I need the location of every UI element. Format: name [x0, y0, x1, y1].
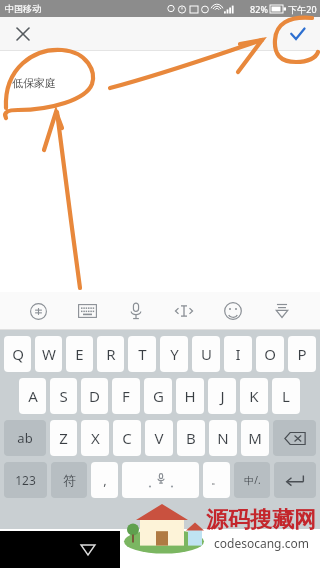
button[interactable]: key [274, 462, 316, 498]
button[interactable]: key [122, 462, 199, 498]
staticText: Y [170, 344, 179, 364]
staticText: O [264, 344, 276, 364]
staticText: 。 [211, 473, 222, 487]
button[interactable]: F [112, 378, 140, 414]
staticText: H [184, 386, 196, 406]
button[interactable]: J [208, 378, 236, 414]
button[interactable]: Hide keyboard [73, 535, 103, 565]
staticText: J [220, 386, 225, 406]
staticText: X [91, 428, 100, 448]
staticText: G [153, 386, 164, 406]
button[interactable]: Confirm [282, 19, 312, 49]
staticText: 符 [63, 472, 76, 488]
button[interactable]: More [265, 294, 299, 328]
staticText: D [89, 386, 100, 406]
button[interactable]: Z [50, 420, 77, 456]
button[interactable]: Emoji [216, 294, 250, 328]
button[interactable]: C [113, 420, 141, 456]
staticText: C [122, 428, 132, 448]
button[interactable]: A [19, 378, 46, 414]
button[interactable]: B [177, 420, 205, 456]
staticText: A [28, 386, 38, 406]
button[interactable]: Close [10, 21, 36, 47]
staticText: W [42, 344, 56, 364]
button[interactable]: N [209, 420, 237, 456]
button[interactable]: Voice input [119, 294, 153, 328]
staticText: K [249, 386, 259, 406]
button[interactable]: 。 [203, 462, 230, 498]
staticText: V [154, 428, 164, 448]
button[interactable]: M [241, 420, 269, 456]
button[interactable]: D [81, 378, 108, 414]
button[interactable]: E [66, 336, 93, 372]
staticText: 中/. [244, 473, 261, 487]
staticText: E [75, 344, 84, 364]
button[interactable]: U [192, 336, 220, 372]
button[interactable]: X [81, 420, 109, 456]
button[interactable]: O [256, 336, 284, 372]
staticText: B [186, 428, 196, 448]
button[interactable]: Y [160, 336, 188, 372]
button[interactable]: P [288, 336, 316, 372]
staticText: 下午 [288, 4, 306, 15]
staticText: L [282, 386, 290, 406]
button[interactable]: Cursor [167, 294, 201, 328]
button[interactable]: Keyboard [70, 294, 104, 328]
staticText: 中国移动 [5, 3, 41, 14]
staticText: Z [59, 428, 68, 448]
button[interactable]: , [91, 462, 118, 498]
button[interactable]: key [273, 420, 316, 456]
staticText: F [122, 386, 130, 406]
button[interactable]: I [224, 336, 252, 372]
staticText: Q [12, 344, 24, 364]
staticText: M [248, 428, 262, 448]
staticText: S [59, 386, 68, 406]
button[interactable]: R [97, 336, 124, 372]
staticText: R [106, 344, 116, 364]
button[interactable]: S [50, 378, 77, 414]
button[interactable]: V [145, 420, 173, 456]
button[interactable]: pinyin [21, 294, 55, 328]
staticText: I [235, 344, 241, 364]
button[interactable]: K [240, 378, 268, 414]
button[interactable]: G [144, 378, 172, 414]
button[interactable]: 中/. [234, 462, 270, 498]
staticText: P [297, 344, 307, 364]
button[interactable]: 符 [51, 462, 87, 498]
staticText: 20 [306, 3, 317, 15]
button[interactable]: 123 [4, 462, 47, 498]
staticText: 源码搜藏网 [206, 506, 316, 534]
button[interactable]: L [272, 378, 300, 414]
button[interactable]: H [176, 378, 204, 414]
staticText: , [103, 471, 107, 489]
staticText: T [138, 344, 147, 364]
staticText: ab [17, 429, 33, 447]
button[interactable]: T [128, 336, 156, 372]
button[interactable]: Q [4, 336, 31, 372]
staticText: N [217, 428, 229, 448]
staticText: 82% [250, 3, 268, 15]
button[interactable]: ab [4, 420, 46, 456]
staticText: codesocang.com [214, 535, 309, 551]
staticText: U [201, 344, 212, 364]
button[interactable]: W [35, 336, 62, 372]
staticText: 123 [15, 472, 36, 488]
staticText: 低保家庭 [12, 76, 56, 90]
